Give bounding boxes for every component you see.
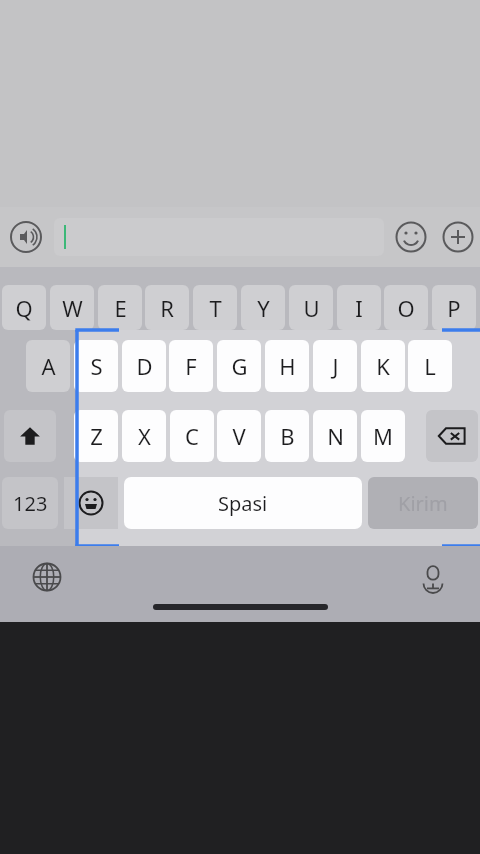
button[interactable]: Z — [74, 410, 118, 462]
button[interactable]: D — [122, 340, 166, 392]
staticText: E — [114, 293, 127, 323]
staticText: V — [232, 421, 246, 451]
staticText: D — [136, 351, 153, 381]
staticText: R — [160, 293, 174, 323]
button[interactable]: T — [193, 285, 237, 330]
staticText: S — [90, 351, 103, 381]
staticText: X — [138, 421, 151, 451]
button[interactable]: W — [50, 285, 94, 330]
button[interactable]: Spasi — [124, 477, 362, 529]
staticText: U — [303, 293, 320, 323]
button[interactable]: I — [337, 285, 381, 330]
button[interactable]: Backspace — [426, 410, 478, 462]
staticText: F — [185, 351, 197, 381]
button[interactable]: R — [145, 285, 189, 330]
staticText: Z — [90, 421, 103, 451]
button[interactable] — [54, 218, 384, 256]
button[interactable]: U — [289, 285, 333, 330]
button[interactable]: B — [265, 410, 309, 462]
button[interactable]: E — [98, 285, 142, 330]
button[interactable]: Voice message — [8, 219, 44, 255]
button[interactable]: Y — [241, 285, 285, 330]
staticText: O — [397, 293, 415, 323]
button[interactable]: X — [122, 410, 166, 462]
button[interactable]: 123 — [2, 477, 58, 529]
button[interactable]: Change keyboard language — [26, 556, 68, 598]
button[interactable]: Emoji — [393, 219, 429, 255]
staticText: Q — [15, 293, 33, 323]
button[interactable]: Q — [2, 285, 46, 330]
staticText: W — [62, 293, 83, 323]
button[interactable]: J — [313, 340, 357, 392]
staticText: I — [355, 293, 363, 323]
staticText: J — [332, 351, 339, 381]
staticText: G — [231, 351, 248, 381]
staticText: Spasi — [218, 490, 268, 517]
staticText: T — [209, 293, 222, 323]
button[interactable]: G — [217, 340, 261, 392]
staticText: M — [373, 421, 393, 451]
button[interactable]: A — [26, 340, 70, 392]
button[interactable]: M — [361, 410, 405, 462]
button[interactable]: Attach — [440, 219, 476, 255]
button[interactable]: V — [217, 410, 261, 462]
button[interactable]: L — [408, 340, 452, 392]
button[interactable]: P — [432, 285, 476, 330]
staticText: 123 — [13, 490, 48, 517]
button[interactable]: Emoji keyboard — [64, 477, 118, 529]
button[interactable]: S — [74, 340, 118, 392]
staticText: Y — [257, 293, 270, 323]
button[interactable]: Shift — [4, 410, 56, 462]
staticText: C — [185, 421, 199, 451]
button[interactable]: H — [265, 340, 309, 392]
staticText: B — [280, 421, 295, 451]
button[interactable]: Kirim — [368, 477, 478, 529]
button[interactable]: Voice input — [412, 556, 454, 598]
button[interactable]: F — [169, 340, 213, 392]
staticText: A — [41, 351, 56, 381]
button[interactable]: N — [313, 410, 357, 462]
button[interactable]: C — [170, 410, 214, 462]
staticText: Kirim — [398, 490, 448, 517]
button[interactable]: O — [384, 285, 428, 330]
button[interactable]: K — [361, 340, 405, 392]
staticText: N — [327, 421, 344, 451]
staticText: L — [424, 351, 436, 381]
staticText: K — [376, 351, 390, 381]
staticText: P — [447, 293, 461, 323]
staticText: H — [279, 351, 296, 381]
